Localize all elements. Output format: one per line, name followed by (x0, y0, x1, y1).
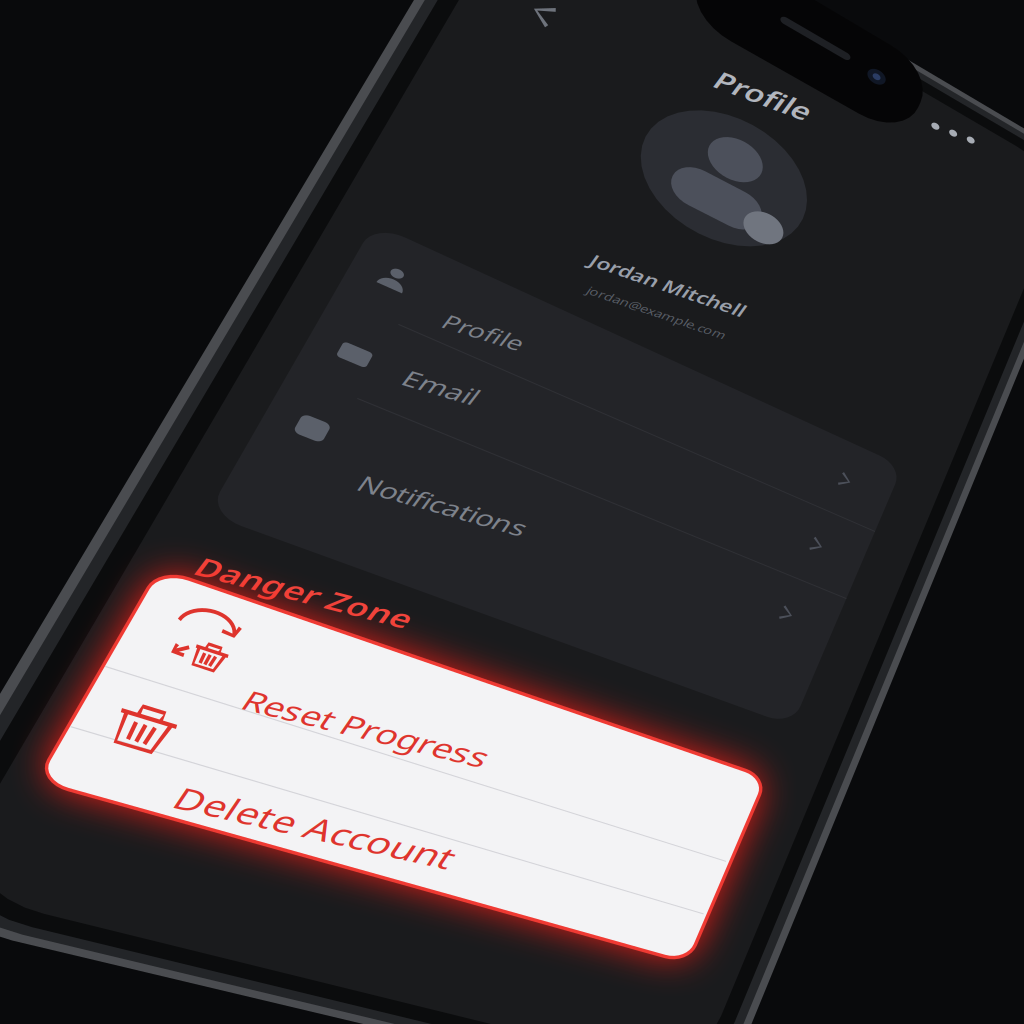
staticText: Email (432, 367, 476, 390)
staticText: Notifications (409, 472, 509, 495)
staticText: Reset Progress (315, 687, 454, 714)
staticText: Profile (472, 311, 521, 332)
button[interactable]: Notifications (0, 0, 1024, 1024)
staticText: Delete Account (257, 784, 410, 813)
button[interactable]: More (0, 0, 1024, 1024)
staticText: jordan@example.com (621, 284, 717, 296)
button[interactable]: Email (0, 0, 1024, 1024)
button[interactable]: Delete Account (0, 0, 1024, 1024)
button[interactable]: Reset Progress (0, 0, 1024, 1024)
staticText: Danger Zone (263, 555, 382, 579)
button[interactable]: Back (0, 0, 1024, 1024)
button[interactable]: Profile (0, 0, 1024, 1024)
staticText: Profile (745, 65, 816, 95)
staticText: Jordan Mitchell (630, 251, 738, 270)
